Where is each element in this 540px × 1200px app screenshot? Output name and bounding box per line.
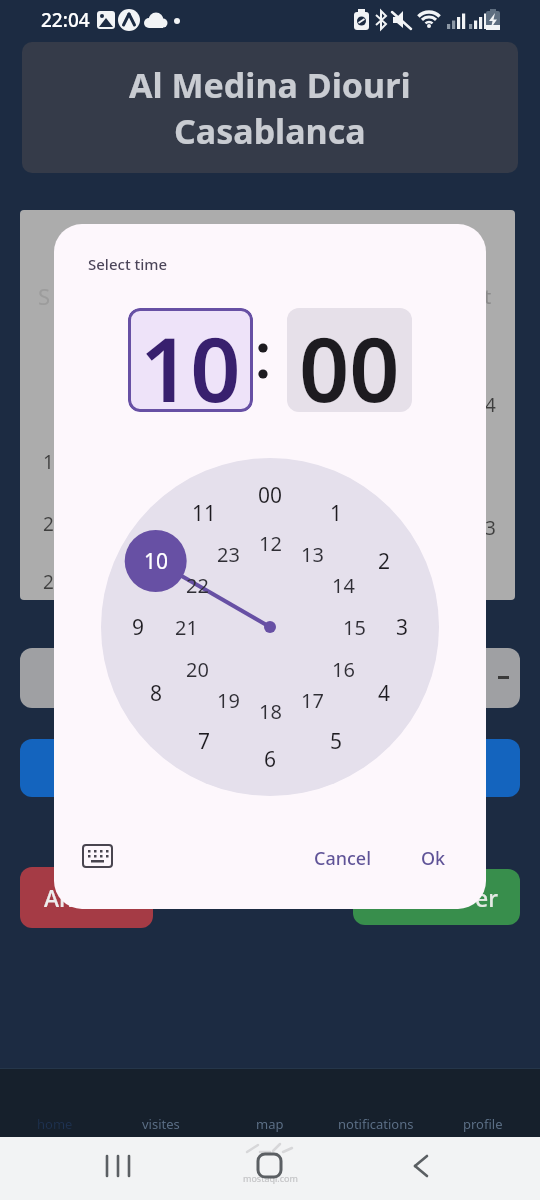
staticText: t — [484, 283, 492, 310]
button[interactable]: 10 — [128, 308, 253, 412]
button[interactable]: Ok — [393, 828, 473, 888]
staticText: Casablanca — [174, 108, 366, 154]
staticText: 00 — [299, 308, 400, 412]
button[interactable] — [76, 838, 120, 876]
staticText: notifications — [338, 1115, 414, 1133]
staticText: 3 — [396, 613, 409, 642]
staticText: 23 — [217, 541, 240, 568]
button[interactable]: Cancel — [263, 828, 423, 888]
staticText: 19 — [217, 687, 240, 714]
staticText: 2 — [378, 547, 391, 576]
staticText: 18 — [259, 698, 282, 725]
staticText: 3 — [485, 515, 496, 541]
staticText: home — [37, 1115, 73, 1133]
staticText: 22:04 — [41, 7, 90, 33]
staticText: 12 — [259, 530, 282, 557]
staticText: 17 — [301, 687, 324, 714]
staticText: 2 — [43, 511, 54, 537]
staticText: 5 — [330, 727, 343, 756]
staticText: 1 — [330, 499, 343, 528]
button[interactable]: Ann — [20, 867, 153, 928]
staticText: 00 — [258, 481, 283, 510]
button[interactable]: home — [10, 1104, 100, 1144]
staticText: S — [38, 281, 51, 311]
staticText: Ann — [44, 882, 88, 913]
button[interactable]: visites — [116, 1104, 206, 1144]
staticText: 10 — [140, 308, 241, 412]
staticText: profile — [463, 1115, 503, 1133]
staticText: 6 — [264, 745, 277, 774]
staticText: 8 — [150, 679, 163, 708]
staticText: 14 — [332, 572, 355, 599]
staticText: Al Medina Diouri — [129, 62, 411, 108]
staticText: mostaql.com — [243, 1172, 298, 1184]
button[interactable]: notifications — [321, 1104, 431, 1144]
staticText: 22 — [186, 572, 209, 599]
staticText: 11 — [192, 499, 217, 528]
staticText: 9 — [132, 613, 145, 642]
staticText: 15 — [343, 614, 366, 641]
staticText: visites — [142, 1115, 180, 1133]
staticText: 4 — [485, 392, 496, 418]
staticText: er — [475, 882, 498, 913]
staticText: 16 — [332, 656, 355, 683]
button[interactable]: map — [225, 1104, 315, 1144]
staticText: 1 — [43, 449, 54, 475]
button[interactable]: er — [353, 869, 520, 925]
button[interactable] — [20, 648, 520, 708]
staticText: Ok — [421, 846, 446, 871]
button[interactable] — [20, 739, 520, 797]
staticText: Cancel — [314, 846, 372, 871]
staticText: 21 — [175, 614, 198, 641]
button[interactable]: 00 — [287, 308, 412, 412]
button[interactable]: profile — [438, 1104, 528, 1144]
staticText: 4 — [378, 679, 391, 708]
staticText: 20 — [186, 656, 209, 683]
staticText: 2 — [43, 569, 54, 595]
staticText: 10 — [144, 547, 169, 576]
staticText: 7 — [198, 727, 211, 756]
staticText: map — [256, 1115, 284, 1133]
staticText: Select time — [88, 254, 168, 274]
staticText: 13 — [301, 541, 324, 568]
